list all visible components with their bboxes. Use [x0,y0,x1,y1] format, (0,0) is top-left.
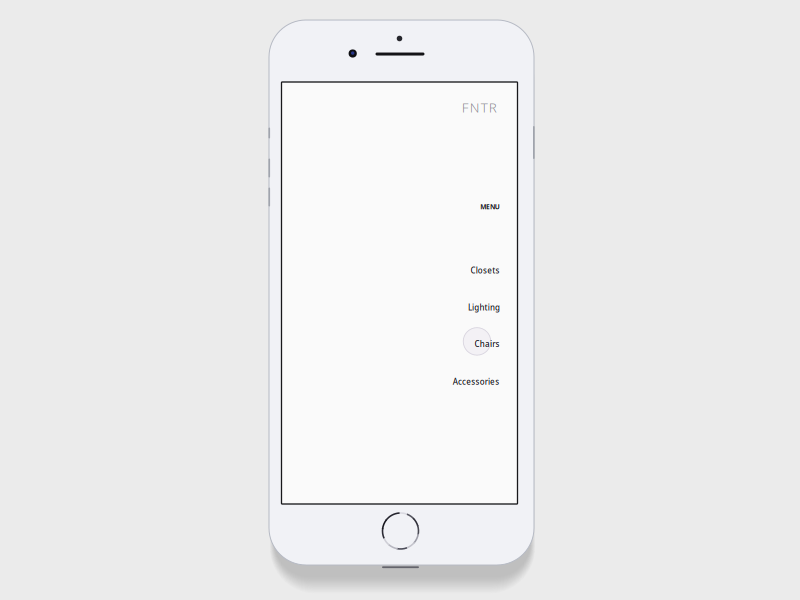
staticText: FNTR [462,98,497,116]
staticText: Closets [470,265,499,276]
button[interactable]: Chairs [470,333,504,355]
staticText: Accessories [453,376,499,387]
staticText: Chairs [475,339,499,349]
button[interactable]: Closets [465,259,504,282]
button[interactable]: FNTR [458,93,501,121]
staticText: Lighting [468,302,500,313]
button[interactable]: Accessories [448,370,504,393]
button[interactable]: Lighting [463,296,505,319]
staticText: MENU [480,202,500,211]
